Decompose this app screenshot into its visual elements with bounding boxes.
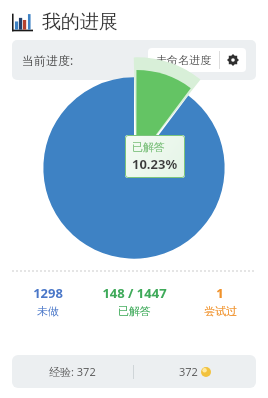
staticText: 未命名进度 xyxy=(156,53,211,67)
button[interactable]: 未命名进度 xyxy=(148,48,219,72)
button[interactable]: 经验: 372 xyxy=(12,355,256,388)
staticText: 1 xyxy=(216,284,224,302)
staticText: 1298 xyxy=(33,284,63,302)
staticText: 148 / 1447 xyxy=(102,284,167,302)
staticText: 当前进度: xyxy=(22,52,74,68)
other: Coins xyxy=(201,367,211,377)
other: Progress chart xyxy=(12,12,33,33)
staticText: 372 xyxy=(179,364,198,379)
button[interactable]: 1 xyxy=(180,282,260,320)
staticText: 未做 xyxy=(37,304,59,318)
staticText: 10.23% xyxy=(132,155,178,173)
staticText: 已解答 xyxy=(118,304,151,318)
staticText: 已解答 xyxy=(132,140,165,154)
button[interactable]: 1298 xyxy=(8,282,88,320)
staticText: 我的进展 xyxy=(42,10,118,34)
button[interactable]: 148 / 1447 xyxy=(88,282,180,320)
staticText: 尝试过 xyxy=(204,304,237,318)
staticText: 经验: 372 xyxy=(49,364,96,379)
button[interactable]: Settings xyxy=(220,49,246,71)
